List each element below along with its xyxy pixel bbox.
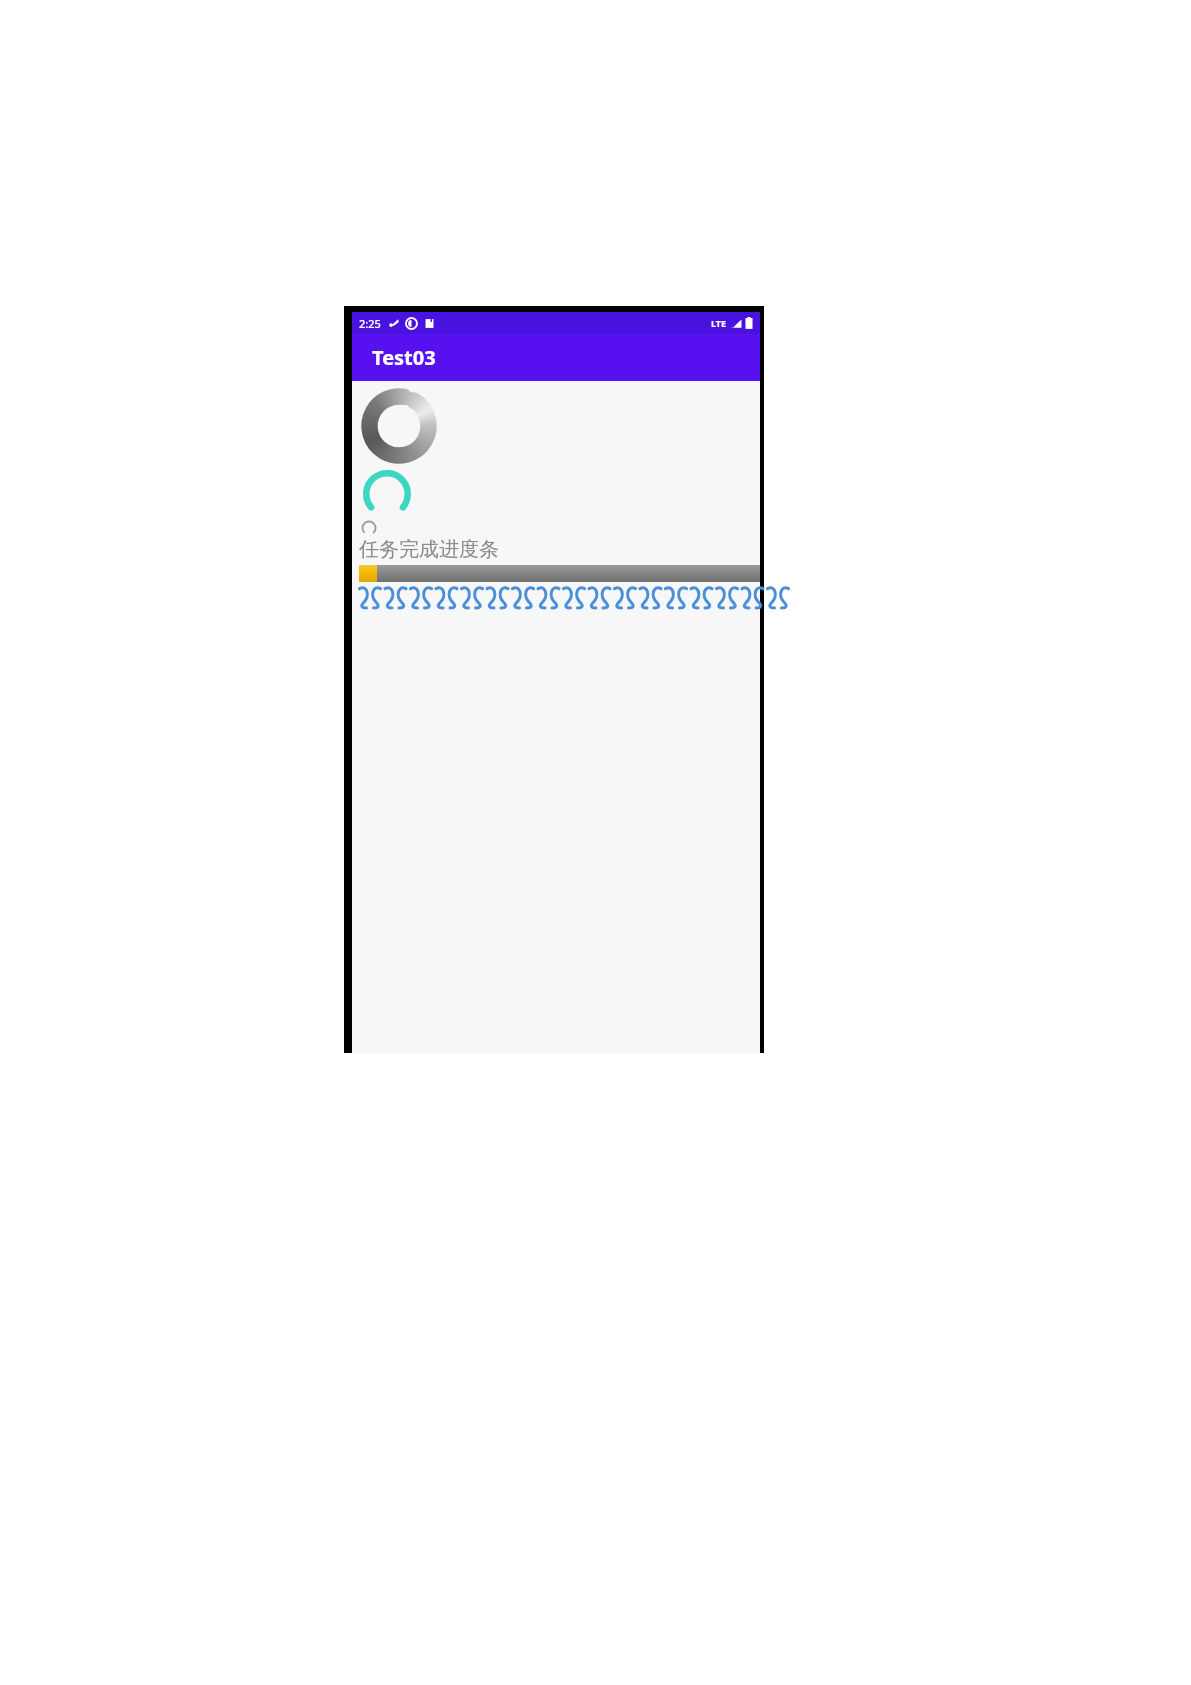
staticText: 2:25 xyxy=(359,316,381,331)
staticText: 任务完成进度条 xyxy=(359,537,499,562)
button[interactable] xyxy=(359,565,760,582)
staticText: LTE xyxy=(711,317,727,329)
staticText: Test03 xyxy=(372,344,436,371)
button[interactable]: Test03 xyxy=(352,334,760,381)
